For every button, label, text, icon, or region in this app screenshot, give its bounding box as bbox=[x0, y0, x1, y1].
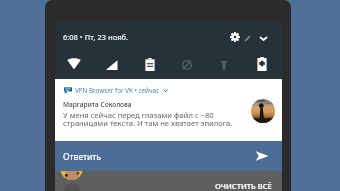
button[interactable]: Do not disturb bbox=[178, 56, 196, 74]
button[interactable]: ОЧИСТИТЬ ВСЁ bbox=[215, 181, 272, 191]
button[interactable]: Wi-Fi bbox=[65, 54, 83, 72]
staticText: 6:08 • Пт, 23 нояб. bbox=[63, 32, 129, 42]
button[interactable]: Mobile data bbox=[102, 56, 120, 74]
staticText: Маргарита Соколова bbox=[63, 100, 132, 109]
button[interactable]: Settings bbox=[227, 29, 243, 45]
button[interactable]: Ответить bbox=[55, 141, 282, 171]
button[interactable]: Battery bbox=[141, 55, 159, 73]
staticText: У меня сейчас перед глазами файл с ~80 с… bbox=[63, 110, 237, 128]
button[interactable]: Expand bbox=[255, 30, 271, 46]
staticText: Ответить bbox=[63, 151, 102, 163]
button[interactable]: Edit tiles bbox=[241, 32, 253, 44]
button[interactable]: Battery saver bbox=[253, 55, 271, 73]
button[interactable]: VPN Browser for VK • сейчас bbox=[55, 79, 282, 141]
button[interactable]: Send bbox=[254, 148, 270, 164]
staticText: VPN Browser for VK • сейчас bbox=[75, 86, 160, 95]
button[interactable]: Flashlight bbox=[215, 56, 233, 74]
